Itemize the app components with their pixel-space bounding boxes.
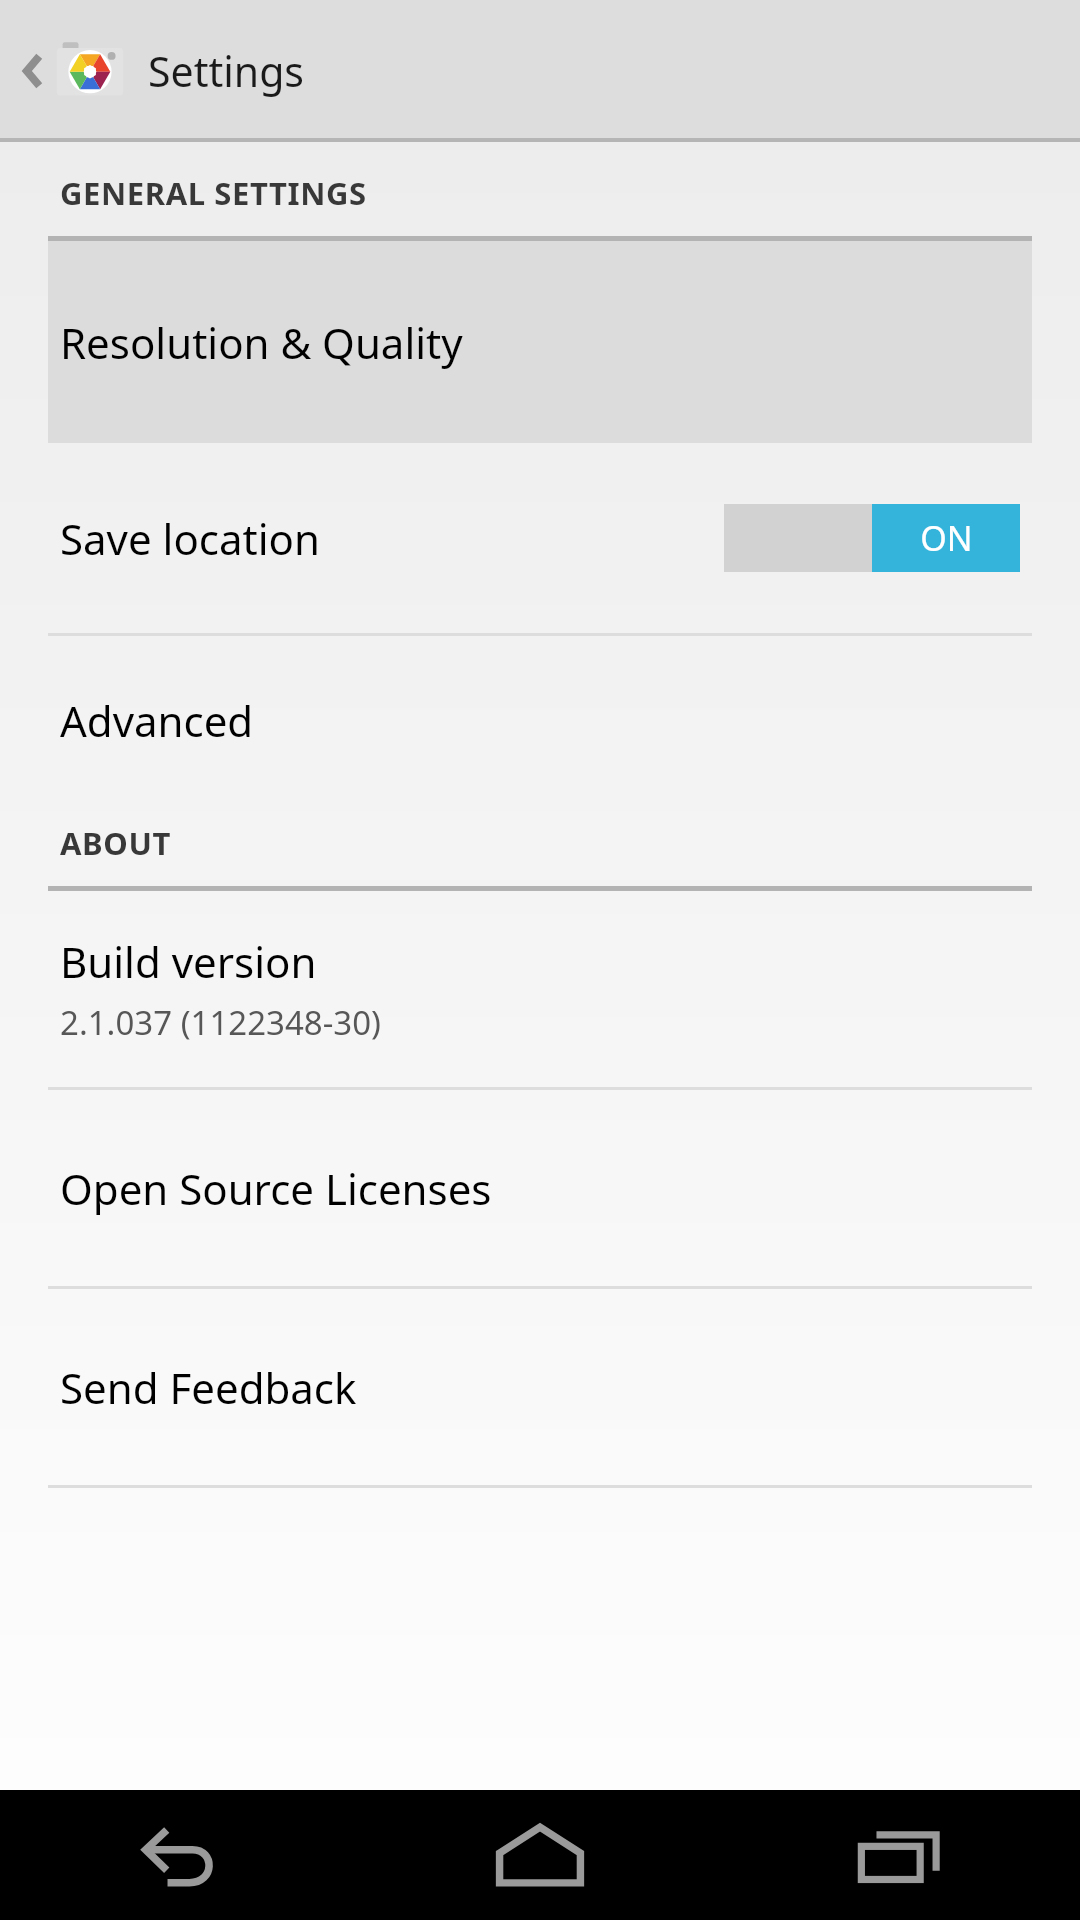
button[interactable]: Save location: [0, 443, 1080, 633]
staticText: Settings: [148, 43, 305, 99]
staticText: Build version: [60, 933, 317, 990]
button[interactable]: Save location, on: [724, 504, 1020, 572]
button[interactable]: Home: [360, 1790, 720, 1920]
button[interactable]: Advanced: [0, 636, 1080, 804]
staticText: Open Source Licenses: [60, 1160, 492, 1217]
button[interactable]: Back: [0, 1790, 360, 1920]
button[interactable]: Open Source Licenses: [0, 1090, 1080, 1286]
staticText: ABOUT: [60, 822, 171, 864]
staticText: 2.1.037 (1122348-30): [60, 1000, 381, 1045]
staticText: Advanced: [60, 692, 254, 749]
staticText: GENERAL SETTINGS: [60, 172, 367, 214]
staticText: Resolution & Quality: [60, 314, 463, 371]
button[interactable]: Build version: [0, 891, 1080, 1087]
button[interactable]: Send Feedback: [0, 1289, 1080, 1485]
staticText: Send Feedback: [60, 1359, 357, 1416]
staticText: Save location: [60, 510, 320, 567]
button[interactable]: Recent apps: [720, 1790, 1080, 1920]
button[interactable]: Resolution & Quality: [48, 241, 1032, 443]
staticText: ON: [920, 515, 973, 561]
button[interactable]: Navigate up: [14, 35, 132, 107]
